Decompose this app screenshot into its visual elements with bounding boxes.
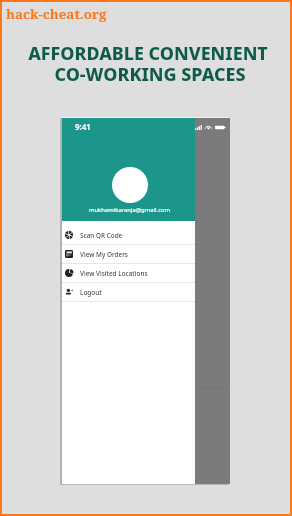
button[interactable]: Profile photo: [112, 167, 148, 203]
staticText: Scan QR Code: [80, 231, 123, 240]
button[interactable]: Logout: [62, 283, 195, 302]
staticText: hack-cheat.org: [6, 5, 107, 23]
button[interactable]: View Visited Locations: [62, 264, 195, 283]
staticText: mukhamikaranja@gmail.com: [63, 206, 196, 214]
button[interactable]: Close navigation drawer: [62, 118, 230, 484]
staticText: CO-WORKING SPACES: [6, 62, 292, 86]
staticText: Logout: [80, 288, 102, 297]
staticText: AFFORDABLE CONVENIENT: [4, 41, 292, 65]
button[interactable]: View My Orders: [62, 245, 195, 264]
staticText: 9:41: [75, 121, 91, 132]
staticText: View My Orders: [80, 250, 128, 259]
button[interactable]: Scan QR Code: [62, 226, 195, 245]
staticText: View Visited Locations: [80, 269, 148, 278]
